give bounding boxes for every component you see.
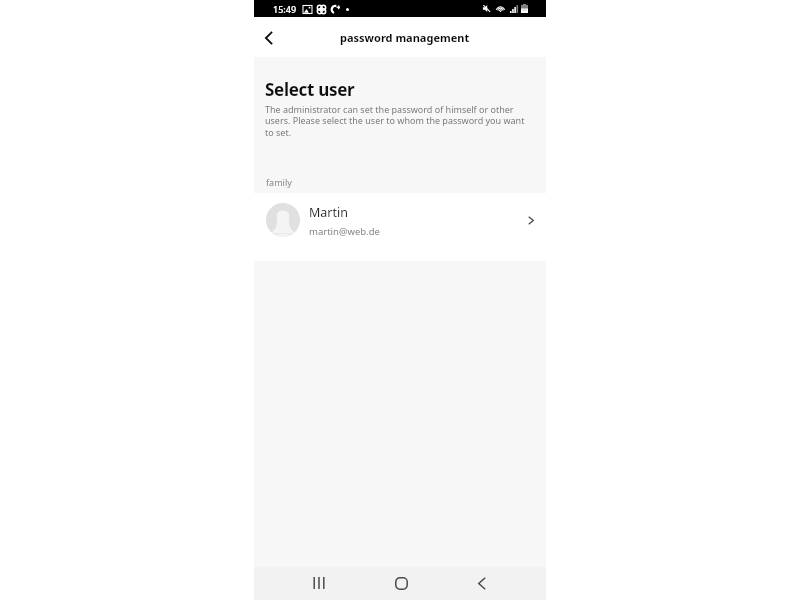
staticText: The administrator can set the password o… bbox=[265, 103, 529, 139]
button[interactable]: Back bbox=[468, 569, 496, 597]
staticText: 15:49 bbox=[273, 3, 297, 15]
other: Open Martin bbox=[522, 211, 540, 229]
button[interactable]: Home bbox=[387, 569, 415, 597]
staticText: password management bbox=[340, 30, 470, 45]
staticText: Select user bbox=[265, 78, 355, 101]
staticText: martin@web.de bbox=[309, 225, 380, 238]
button[interactable]: Martin bbox=[254, 193, 546, 261]
button[interactable]: Recents bbox=[305, 569, 333, 597]
staticText: Martin bbox=[309, 204, 348, 221]
button[interactable]: Back bbox=[254, 23, 283, 52]
staticText: family bbox=[266, 176, 292, 188]
